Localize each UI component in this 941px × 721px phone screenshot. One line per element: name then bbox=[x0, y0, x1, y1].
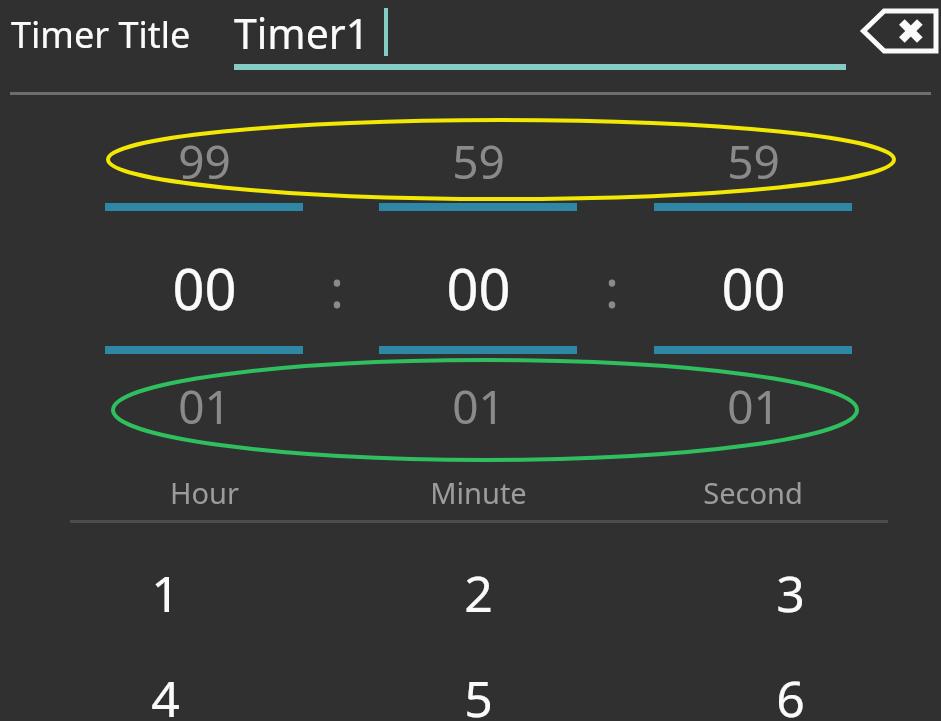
staticText: 01 bbox=[178, 375, 231, 437]
button[interactable]: 5 bbox=[358, 648, 598, 721]
staticText: Second bbox=[703, 473, 803, 512]
staticText: 01 bbox=[727, 375, 780, 437]
staticText: Hour bbox=[170, 473, 239, 512]
staticText: 4 bbox=[151, 664, 180, 721]
button[interactable]: 01 bbox=[105, 375, 303, 437]
button[interactable]: Timer1 bbox=[234, 5, 370, 61]
button[interactable]: 6 bbox=[670, 648, 910, 721]
button[interactable]: Backspace bbox=[862, 6, 936, 56]
staticText: Timer Title bbox=[11, 10, 191, 59]
staticText: 00 bbox=[172, 250, 237, 326]
staticText: 00 bbox=[721, 250, 786, 326]
staticText: : bbox=[605, 252, 619, 323]
button[interactable]: 59 bbox=[654, 130, 852, 192]
staticText: 3 bbox=[776, 559, 805, 627]
staticText: 59 bbox=[727, 130, 780, 192]
button[interactable]: 3 bbox=[670, 543, 910, 643]
staticText: Minute bbox=[430, 473, 527, 512]
button[interactable]: 01 bbox=[654, 375, 852, 437]
button[interactable]: 00 bbox=[654, 250, 852, 326]
staticText: : bbox=[330, 252, 344, 323]
button[interactable]: 4 bbox=[45, 648, 285, 721]
button[interactable]: 2 bbox=[358, 543, 598, 643]
button[interactable]: 59 bbox=[379, 130, 577, 192]
staticText: 6 bbox=[776, 664, 805, 721]
button[interactable]: 01 bbox=[379, 375, 577, 437]
staticText: 2 bbox=[464, 559, 493, 627]
staticText: 01 bbox=[452, 375, 505, 437]
staticText: 99 bbox=[178, 130, 231, 192]
button[interactable]: 1 bbox=[45, 543, 285, 643]
staticText: 00 bbox=[446, 250, 511, 326]
staticText: 59 bbox=[452, 130, 505, 192]
button[interactable]: 00 bbox=[105, 250, 303, 326]
button[interactable]: 00 bbox=[379, 250, 577, 326]
staticText: 1 bbox=[151, 559, 180, 627]
staticText: 5 bbox=[464, 664, 493, 721]
button[interactable]: 99 bbox=[105, 130, 303, 192]
